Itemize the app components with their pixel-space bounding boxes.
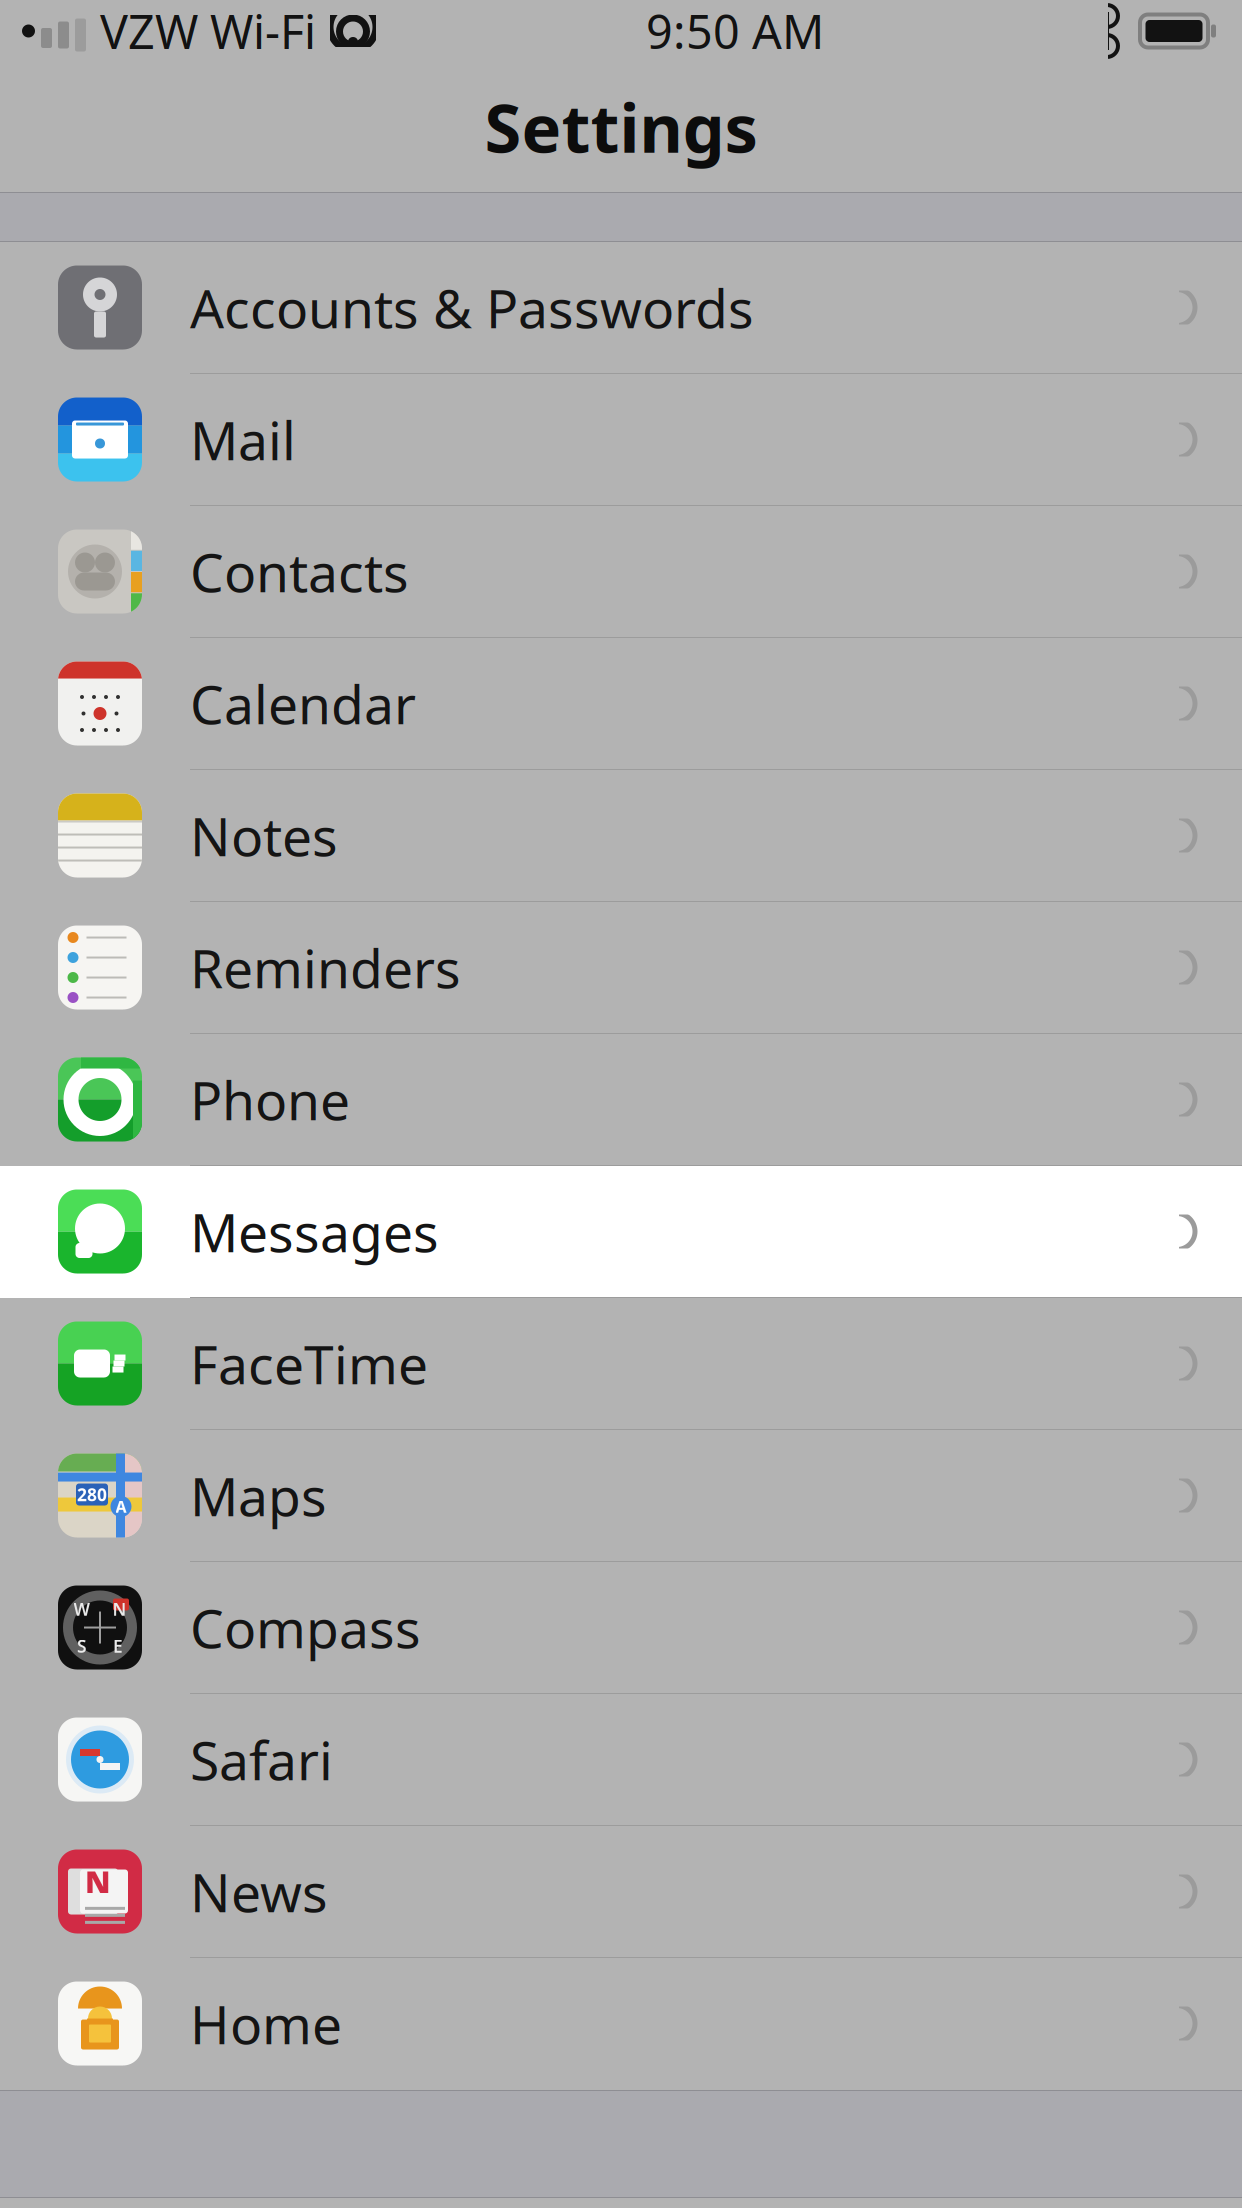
staticText: N: [112, 1597, 126, 1620]
staticText: Mail: [190, 404, 296, 475]
staticText: Notes: [190, 800, 338, 871]
staticText: Safari: [190, 1724, 333, 1795]
staticText: N: [85, 1861, 111, 1902]
staticText: W: [73, 1597, 90, 1620]
staticText: Home: [190, 1988, 342, 2059]
staticText: VZW Wi-Fi: [100, 0, 316, 62]
staticText: 9:50 AM: [646, 0, 824, 62]
staticText: Accounts & Passwords: [190, 272, 754, 343]
button[interactable]: Messages: [0, 1166, 1242, 1298]
staticText: Reminders: [190, 932, 461, 1003]
button[interactable]: Notes: [0, 770, 1242, 902]
staticText: 280: [77, 1483, 107, 1506]
staticText: Phone: [190, 1064, 350, 1135]
button[interactable]: W: [0, 1562, 1242, 1694]
staticText: E: [113, 1634, 123, 1657]
button[interactable]: Accounts & Passwords: [0, 242, 1242, 374]
button[interactable]: 280: [0, 1430, 1242, 1562]
staticText: Compass: [190, 1592, 421, 1663]
button[interactable]: Mail: [0, 374, 1242, 506]
button[interactable]: Reminders: [0, 902, 1242, 1034]
staticText: News: [190, 1856, 328, 1927]
staticText: Settings: [484, 83, 757, 171]
staticText: A: [115, 1496, 126, 1517]
staticText: FaceTime: [190, 1328, 428, 1399]
staticText: S: [77, 1634, 87, 1657]
staticText: Contacts: [190, 536, 409, 607]
button[interactable]: Contacts: [0, 506, 1242, 638]
button[interactable]: Calendar: [0, 638, 1242, 770]
button[interactable]: Phone: [0, 1034, 1242, 1166]
button[interactable]: Safari: [0, 1694, 1242, 1826]
button[interactable]: FaceTime: [0, 1298, 1242, 1430]
button[interactable]: Home: [0, 1958, 1242, 2090]
button[interactable]: N: [0, 1826, 1242, 1958]
staticText: Maps: [190, 1460, 327, 1531]
staticText: Calendar: [190, 668, 416, 739]
staticText: Messages: [190, 1196, 439, 1267]
